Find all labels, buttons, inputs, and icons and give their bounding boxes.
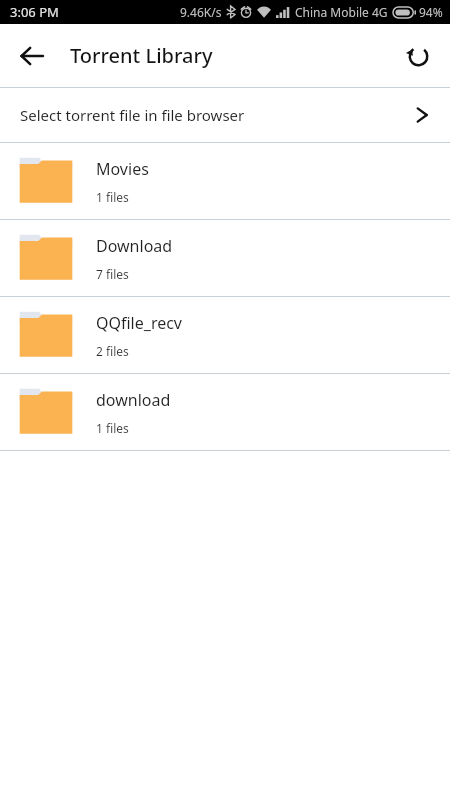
staticText: Download	[96, 235, 173, 257]
staticText: Movies	[96, 158, 149, 180]
staticText: China Mobile 4G	[295, 4, 388, 20]
staticText: Torrent Library	[70, 42, 213, 69]
staticText: download	[96, 389, 171, 411]
button[interactable]: Refresh	[394, 32, 442, 80]
button[interactable]: Download	[0, 220, 450, 296]
staticText: QQfile_recv	[96, 312, 183, 334]
staticText: 2 files	[96, 343, 129, 359]
button[interactable]: download	[0, 374, 450, 450]
button[interactable]: Back	[8, 32, 56, 80]
staticText: 1 files	[96, 189, 129, 205]
staticText: 9.46K/s	[180, 4, 222, 20]
staticText: 1 files	[96, 420, 129, 436]
staticText: 7 files	[96, 266, 129, 282]
staticText: 94%	[419, 4, 443, 20]
button[interactable]: QQfile_recv	[0, 297, 450, 373]
button[interactable]: Select torrent file in file browser	[0, 88, 450, 142]
button[interactable]: Movies	[0, 143, 450, 219]
staticText: Select torrent file in file browser	[20, 105, 415, 125]
staticText: 3:06 PM	[10, 3, 59, 21]
